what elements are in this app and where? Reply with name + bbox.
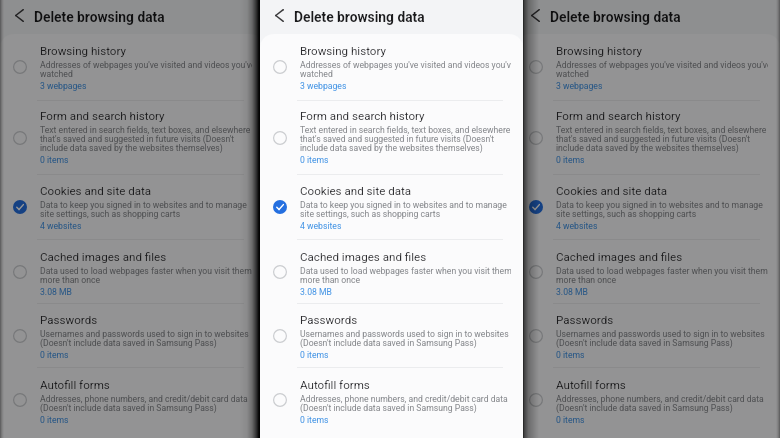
staticText: 0 items bbox=[556, 155, 585, 165]
staticText: 4 websites bbox=[40, 221, 82, 231]
button[interactable]: Form and search history bbox=[516, 101, 780, 174]
button[interactable]: Cached images and files bbox=[516, 240, 780, 303]
button[interactable]: Back bbox=[260, 0, 294, 34]
staticText: Browsing history bbox=[556, 44, 642, 58]
staticText: Addresses, phone numbers, and credit/deb… bbox=[556, 394, 764, 413]
staticText: Usernames and passwords used to sign in … bbox=[40, 329, 249, 348]
staticText: Usernames and passwords used to sign in … bbox=[300, 329, 509, 348]
staticText: Data to keep you signed in to websites a… bbox=[556, 200, 763, 219]
staticText: Form and search history bbox=[556, 109, 681, 123]
button[interactable]: Cookies and site data bbox=[0, 175, 264, 239]
staticText: Browsing history bbox=[300, 44, 386, 58]
staticText: 0 items bbox=[300, 155, 329, 165]
staticText: 4 websites bbox=[556, 221, 598, 231]
button[interactable]: Autofill forms bbox=[516, 368, 780, 432]
button[interactable]: Cookies and site data bbox=[516, 175, 780, 239]
button[interactable]: Cookies and site data bbox=[260, 175, 523, 239]
button[interactable]: Cached images and files bbox=[260, 240, 523, 303]
staticText: 3 webpages bbox=[300, 81, 347, 91]
button[interactable]: Browsing history bbox=[260, 34, 523, 100]
staticText: Cookies and site data bbox=[300, 184, 412, 198]
button[interactable]: Form and search history bbox=[0, 101, 264, 174]
staticText: Cached images and files bbox=[300, 250, 427, 264]
staticText: Data to keep you signed in to websites a… bbox=[300, 200, 507, 219]
staticText: Form and search history bbox=[300, 109, 425, 123]
button[interactable]: Back bbox=[0, 0, 34, 34]
button[interactable]: Autofill forms bbox=[0, 368, 264, 432]
staticText: Addresses, phone numbers, and credit/deb… bbox=[40, 394, 248, 413]
staticText: 3.08 MB bbox=[40, 287, 72, 297]
staticText: Passwords bbox=[556, 313, 614, 327]
staticText: Form and search history bbox=[40, 109, 165, 123]
staticText: Cached images and files bbox=[40, 250, 167, 264]
staticText: Usernames and passwords used to sign in … bbox=[556, 329, 765, 348]
staticText: Addresses of webpages you've visited and… bbox=[556, 60, 768, 79]
staticText: Addresses of webpages you've visited and… bbox=[300, 60, 511, 79]
staticText: Passwords bbox=[40, 313, 98, 327]
button[interactable]: Passwords bbox=[260, 304, 523, 367]
staticText: Cookies and site data bbox=[556, 184, 668, 198]
staticText: 0 items bbox=[556, 350, 585, 360]
staticText: Text entered in search fields, text boxe… bbox=[300, 125, 511, 153]
staticText: Delete browsing data bbox=[34, 9, 165, 25]
button[interactable]: Passwords bbox=[0, 304, 264, 367]
staticText: 3 webpages bbox=[556, 81, 603, 91]
button[interactable]: Passwords bbox=[516, 304, 780, 367]
staticText: Addresses of webpages you've visited and… bbox=[40, 60, 252, 79]
staticText: Data to keep you signed in to websites a… bbox=[40, 200, 247, 219]
staticText: 0 items bbox=[40, 415, 69, 425]
staticText: Passwords bbox=[300, 313, 358, 327]
staticText: Cookies and site data bbox=[40, 184, 152, 198]
staticText: 3.08 MB bbox=[300, 287, 332, 297]
staticText: Text entered in search fields, text boxe… bbox=[556, 125, 767, 153]
staticText: Browsing history bbox=[40, 44, 126, 58]
staticText: Data used to load webpages faster when y… bbox=[556, 266, 768, 285]
button[interactable]: Autofill forms bbox=[260, 368, 523, 432]
staticText: 0 items bbox=[556, 415, 585, 425]
staticText: Addresses, phone numbers, and credit/deb… bbox=[300, 394, 508, 413]
button[interactable]: Browsing history bbox=[0, 34, 264, 100]
staticText: Autofill forms bbox=[556, 378, 626, 392]
staticText: Data used to load webpages faster when y… bbox=[40, 266, 252, 285]
button[interactable]: Form and search history bbox=[260, 101, 523, 174]
staticText: 4 websites bbox=[300, 221, 342, 231]
staticText: Autofill forms bbox=[300, 378, 370, 392]
staticText: Data used to load webpages faster when y… bbox=[300, 266, 511, 285]
staticText: Text entered in search fields, text boxe… bbox=[40, 125, 251, 153]
staticText: Delete browsing data bbox=[294, 9, 425, 25]
staticText: 3.08 MB bbox=[556, 287, 588, 297]
staticText: 0 items bbox=[300, 350, 329, 360]
staticText: Delete browsing data bbox=[550, 9, 681, 25]
staticText: Autofill forms bbox=[40, 378, 110, 392]
button[interactable]: Back bbox=[516, 0, 550, 34]
staticText: 3 webpages bbox=[40, 81, 87, 91]
button[interactable]: Browsing history bbox=[516, 34, 780, 100]
staticText: 0 items bbox=[40, 155, 69, 165]
button[interactable]: Cached images and files bbox=[0, 240, 264, 303]
staticText: Cached images and files bbox=[556, 250, 683, 264]
staticText: 0 items bbox=[300, 415, 329, 425]
staticText: 0 items bbox=[40, 350, 69, 360]
